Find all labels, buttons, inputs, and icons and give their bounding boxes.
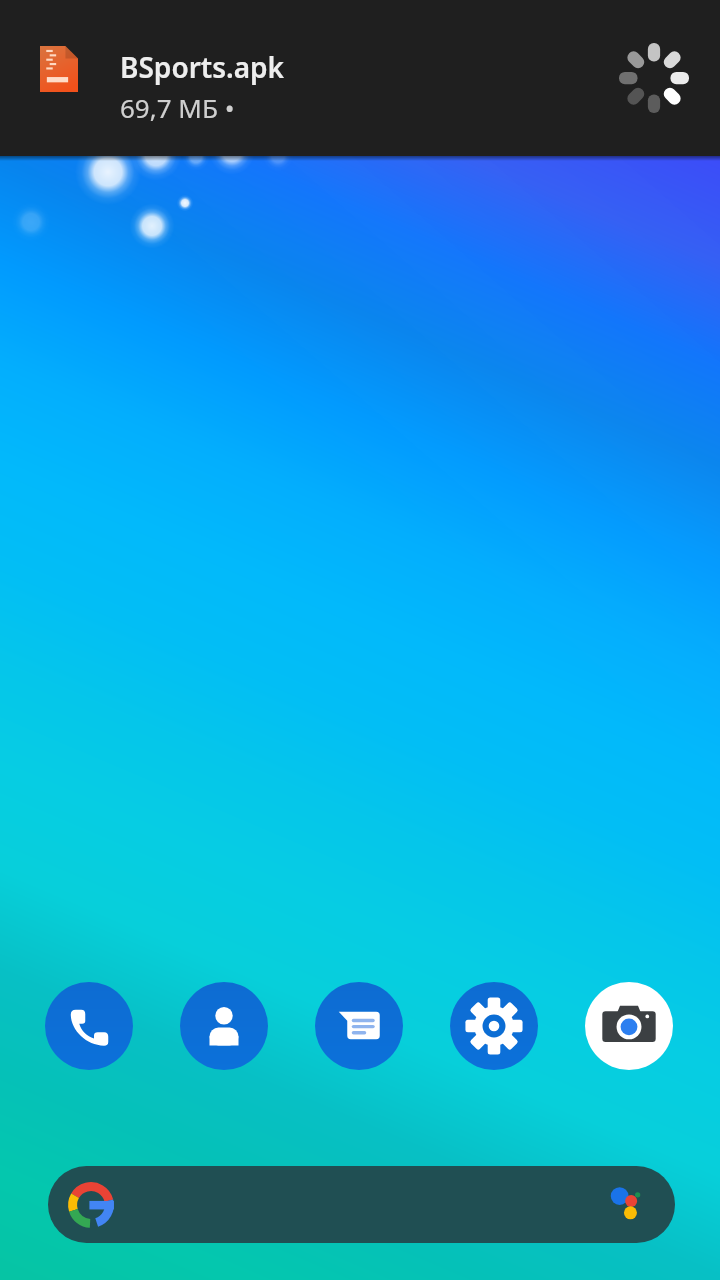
button[interactable]: Camera	[585, 982, 673, 1070]
staticText: BSports.apk	[120, 48, 285, 86]
button[interactable]: Messages	[315, 982, 403, 1070]
button[interactable]: Search	[48, 1166, 675, 1243]
staticText: 69,7 МБ •	[120, 90, 235, 125]
button[interactable]: Settings	[450, 982, 538, 1070]
button[interactable]: BSports.apk	[0, 0, 720, 156]
button[interactable]: Phone	[45, 982, 133, 1070]
button[interactable]: Contacts	[180, 982, 268, 1070]
button[interactable]: Loading	[606, 30, 702, 126]
